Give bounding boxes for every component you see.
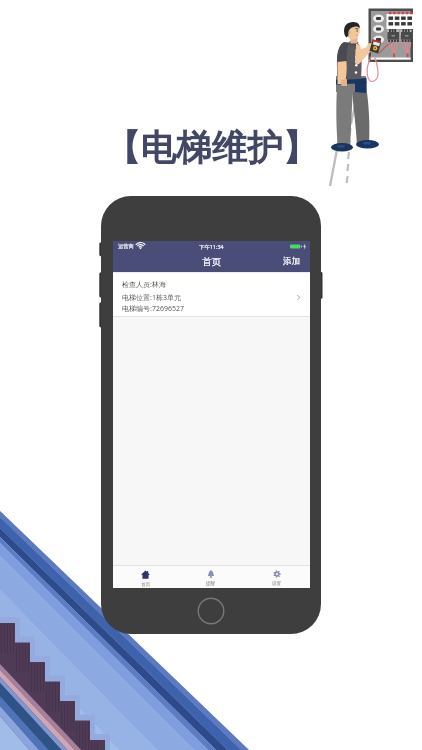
staticText: 检查人员:林海 — [122, 280, 166, 290]
staticText: 电梯编号:72696527 — [122, 304, 184, 314]
button[interactable]: 设置 — [244, 566, 310, 588]
button[interactable]: 提醒 — [178, 566, 244, 588]
staticText: 运营商 — [118, 243, 134, 250]
staticText: 首页 — [202, 256, 221, 268]
staticText: 提醒 — [206, 581, 216, 587]
button[interactable]: 添加 — [276, 251, 310, 272]
button[interactable]: 首页 — [113, 566, 178, 588]
staticText: 设置 — [272, 581, 282, 587]
button[interactable]: 检查人员:林海 — [113, 273, 310, 316]
staticText: 下午11:34 — [199, 243, 224, 250]
staticText: 添加 — [283, 256, 300, 267]
button[interactable]: Home — [197, 597, 225, 625]
staticText: 【电梯维护】 — [105, 126, 318, 171]
staticText: 首页 — [141, 582, 151, 588]
staticText: 电梯位置:1栋3单元 — [122, 293, 181, 303]
